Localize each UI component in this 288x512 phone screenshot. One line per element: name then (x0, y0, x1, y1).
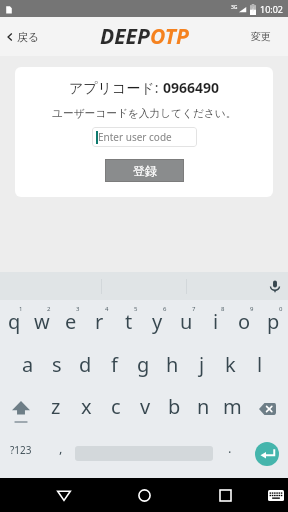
staticText: 登録 (133, 163, 157, 178)
staticText: v (140, 393, 151, 420)
staticText: 戻る (17, 30, 40, 44)
button[interactable]: b (160, 386, 189, 431)
button[interactable]: k (216, 342, 245, 386)
button[interactable]: h (158, 342, 187, 386)
button[interactable]: 9 (230, 300, 259, 342)
button[interactable]: 2 (28, 300, 56, 342)
staticText: . (228, 439, 232, 457)
staticText: 1 (19, 305, 23, 313)
staticText: 3G (231, 4, 238, 11)
button[interactable]: m (218, 386, 247, 431)
button[interactable]: 4 (85, 300, 114, 342)
staticText: OTP (150, 22, 189, 51)
staticText: 10:02 (260, 3, 284, 15)
button[interactable]: l (245, 342, 274, 386)
staticText: 4 (105, 305, 109, 313)
staticText: b (168, 393, 181, 420)
button[interactable]: ?123 (0, 431, 41, 476)
button[interactable]: Switch keyboard (258, 478, 288, 512)
staticText: j (199, 351, 205, 378)
staticText: 2 (47, 305, 51, 313)
staticText: r (95, 308, 104, 335)
staticText: q (8, 308, 21, 335)
staticText: DEEP (100, 22, 150, 51)
staticText: ユーザーコードを入力してください。 (52, 107, 237, 120)
button[interactable]: n (189, 386, 218, 431)
staticText: 0966490 (163, 78, 220, 97)
button[interactable]: f (100, 342, 129, 386)
staticText: z (51, 393, 61, 420)
staticText: f (111, 351, 118, 378)
staticText: y (152, 308, 163, 335)
staticText: ?123 (10, 443, 32, 457)
staticText: k (225, 351, 236, 378)
button[interactable]: Enter (255, 442, 279, 466)
button[interactable]: z (41, 386, 71, 431)
staticText: アプリコード: (69, 78, 163, 97)
button[interactable]: g (129, 342, 158, 386)
button[interactable]: Shift (0, 386, 41, 431)
button[interactable]: j (187, 342, 216, 386)
staticText: g (137, 351, 150, 378)
staticText: Enter user code (98, 130, 172, 144)
staticText: 0 (279, 305, 283, 313)
staticText: , (59, 439, 63, 457)
button[interactable]: c (101, 386, 131, 431)
staticText: t (125, 308, 133, 335)
button[interactable]: a (14, 342, 42, 386)
button[interactable]: 6 (143, 300, 172, 342)
button[interactable]: Voice input (268, 279, 282, 293)
staticText: s (52, 351, 62, 378)
staticText: 8 (221, 305, 225, 313)
button[interactable]: 8 (201, 300, 230, 342)
button[interactable]: 5 (114, 300, 143, 342)
staticText: 7 (192, 305, 196, 313)
button[interactable]: . (220, 431, 240, 476)
button[interactable]: s (42, 342, 71, 386)
button[interactable]: x (71, 386, 101, 431)
staticText: h (166, 351, 179, 378)
button[interactable]: , (50, 431, 72, 476)
button[interactable]: Recents (205, 478, 245, 512)
staticText: o (238, 308, 251, 335)
staticText: w (34, 308, 50, 335)
staticText: u (180, 308, 193, 335)
button[interactable]: Backspace (247, 386, 288, 431)
button[interactable]: 登録 (105, 159, 184, 182)
staticText: p (267, 308, 280, 335)
staticText: x (81, 393, 92, 420)
button[interactable]: 0 (259, 300, 288, 342)
staticText: i (213, 308, 219, 335)
button[interactable]: 3 (56, 300, 85, 342)
staticText: 5 (134, 305, 138, 313)
staticText: 3 (76, 305, 80, 313)
staticText: n (197, 393, 210, 420)
staticText: m (223, 393, 242, 420)
button[interactable]: Back (44, 478, 84, 512)
button[interactable]: 変更 (240, 22, 288, 51)
staticText: d (79, 351, 92, 378)
staticText: a (22, 351, 34, 378)
staticText: 変更 (251, 30, 271, 43)
staticText: l (257, 351, 263, 378)
staticText: c (111, 393, 121, 420)
button[interactable]: Home (124, 478, 164, 512)
button[interactable]: v (131, 386, 160, 431)
staticText: e (65, 308, 77, 335)
staticText: 6 (163, 305, 167, 313)
button[interactable]: Enter user code (92, 127, 197, 147)
button[interactable]: 7 (172, 300, 201, 342)
button[interactable]: 戻る (0, 24, 47, 50)
staticText: 9 (250, 305, 254, 313)
button[interactable]: d (71, 342, 100, 386)
button[interactable]: 1 (0, 300, 28, 342)
